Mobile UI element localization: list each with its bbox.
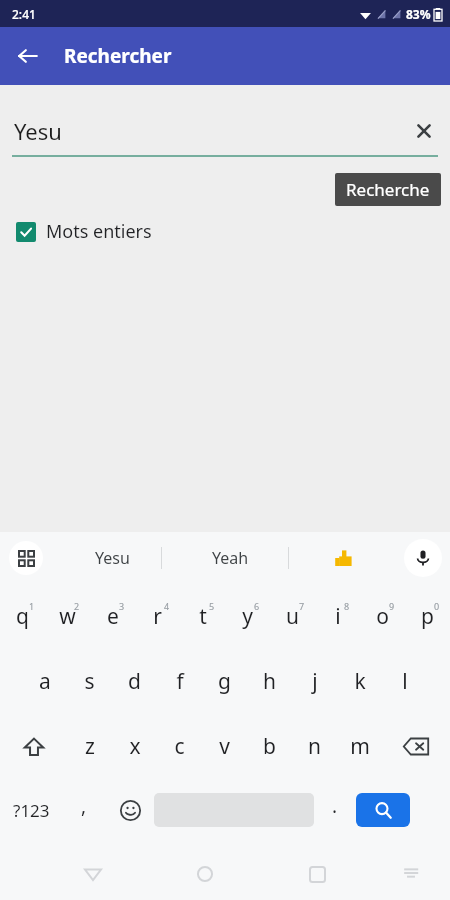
button[interactable]: s (67, 649, 112, 714)
button[interactable]: Emoji (106, 779, 154, 841)
button[interactable]: . (314, 779, 356, 841)
button[interactable]: a (22, 649, 67, 714)
staticText: m (350, 732, 370, 761)
staticText: 1 (29, 600, 35, 612)
button[interactable]: Mots entiers (14, 215, 154, 248)
staticText: 6 (254, 600, 260, 612)
staticText: Rechercher (64, 43, 172, 69)
button[interactable]: h (247, 649, 292, 714)
button[interactable]: x (112, 714, 157, 779)
button[interactable]: , (62, 779, 106, 841)
button[interactable]: f (157, 649, 202, 714)
button[interactable]: i (315, 584, 360, 649)
button[interactable]: Search (356, 793, 410, 827)
button[interactable]: ?123 (0, 779, 62, 841)
staticText: 8 (344, 600, 350, 612)
button[interactable]: j (292, 649, 337, 714)
staticText: Mots entiers (46, 219, 152, 244)
button[interactable]: e (90, 584, 135, 649)
staticText: 2 (74, 600, 80, 612)
button[interactable]: Toolbar (9, 541, 43, 575)
button[interactable]: w (45, 584, 90, 649)
button[interactable]: Recherche (335, 173, 441, 206)
button[interactable]: v (202, 714, 247, 779)
button[interactable]: Thumbs up (320, 534, 368, 582)
button[interactable]: Recent apps (293, 850, 341, 898)
staticText: a (39, 667, 51, 696)
staticText: 83% (406, 6, 431, 22)
button[interactable]: u (270, 584, 315, 649)
staticText: Recherche (346, 178, 430, 201)
button[interactable]: c (157, 714, 202, 779)
staticText: n (308, 732, 321, 761)
button[interactable]: l (382, 649, 427, 714)
staticText: l (402, 667, 408, 696)
button[interactable]: Clear (406, 113, 442, 149)
staticText: d (128, 667, 141, 696)
staticText: s (84, 667, 95, 696)
staticText: 7 (299, 600, 305, 612)
button[interactable]: Backspace (382, 714, 450, 779)
button[interactable]: q (0, 584, 45, 649)
staticText: g (218, 667, 231, 696)
staticText: 0 (434, 600, 440, 612)
button[interactable]: Back (8, 36, 48, 76)
staticText: x (129, 732, 141, 761)
button[interactable]: z (67, 714, 112, 779)
staticText: ?123 (13, 799, 50, 822)
staticText: 9 (389, 600, 395, 612)
staticText: b (263, 732, 276, 761)
button[interactable]: Shift (0, 714, 67, 779)
staticText: c (174, 732, 185, 761)
staticText: i (335, 602, 341, 631)
staticText: y (242, 602, 253, 631)
staticText: v (219, 732, 230, 761)
staticText: p (421, 602, 434, 631)
staticText: 2:41 (12, 6, 36, 22)
staticText: o (376, 602, 389, 631)
staticText: Yesu (95, 547, 130, 569)
button[interactable]: Home (181, 850, 229, 898)
button[interactable]: d (112, 649, 157, 714)
staticText: w (59, 602, 76, 631)
button[interactable]: y (225, 584, 270, 649)
button[interactable]: r (135, 584, 180, 649)
button[interactable]: m (337, 714, 382, 779)
staticText: r (153, 602, 162, 631)
staticText: . (332, 793, 338, 819)
staticText: z (85, 732, 95, 761)
staticText: j (312, 667, 318, 696)
staticText: h (263, 667, 276, 696)
button[interactable]: n (292, 714, 337, 779)
button[interactable]: Hide keyboard (389, 852, 433, 896)
staticText: Yesu (14, 116, 62, 146)
button[interactable]: t (180, 584, 225, 649)
staticText: q (16, 602, 29, 631)
button[interactable]: g (202, 649, 247, 714)
button[interactable]: Back (69, 850, 117, 898)
staticText: f (176, 667, 184, 696)
button[interactable]: Yesu (52, 532, 172, 584)
button[interactable]: Yeah (175, 532, 285, 584)
staticText: 3 (119, 600, 125, 612)
button[interactable]: b (247, 714, 292, 779)
staticText: Yeah (212, 547, 249, 569)
staticText: e (107, 602, 119, 631)
staticText: 4 (164, 600, 170, 612)
button[interactable]: Voice input (404, 539, 442, 577)
staticText: k (354, 667, 366, 696)
button[interactable]: p (405, 584, 450, 649)
button[interactable]: k (337, 649, 382, 714)
staticText: u (286, 602, 299, 631)
staticText: 5 (209, 600, 215, 612)
button[interactable]: o (360, 584, 405, 649)
staticText: , (81, 793, 87, 819)
staticText: t (199, 602, 207, 631)
